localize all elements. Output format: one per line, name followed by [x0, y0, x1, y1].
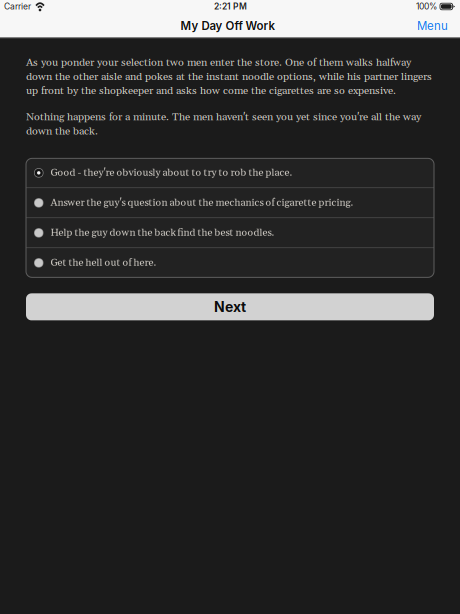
staticText: As you ponder your selection two men ent… — [26, 55, 432, 98]
button[interactable]: Answer the guy's question about the mech… — [26, 188, 434, 217]
staticText: My Day Off Work — [180, 19, 275, 33]
staticText: Next — [214, 298, 246, 315]
button[interactable]: Good - they're obviously about to try to… — [26, 158, 434, 187]
button[interactable]: Next — [26, 293, 434, 320]
button[interactable]: Help the guy down the back find the best… — [26, 218, 434, 247]
staticText: Menu — [417, 19, 448, 33]
button[interactable]: Get the hell out of here. — [26, 248, 434, 277]
button[interactable]: Menu — [409, 13, 456, 39]
staticText: 100% — [416, 1, 437, 12]
staticText: Answer the guy's question about the mech… — [50, 196, 353, 209]
staticText: Carrier — [4, 1, 31, 12]
staticText: Good - they're obviously about to try to… — [50, 166, 292, 179]
staticText: 2:21 PM — [214, 1, 247, 12]
staticText: Help the guy down the back find the best… — [50, 226, 274, 239]
staticText: Get the hell out of here. — [50, 256, 156, 269]
staticText: Nothing happens for a minute. The men ha… — [26, 110, 421, 138]
